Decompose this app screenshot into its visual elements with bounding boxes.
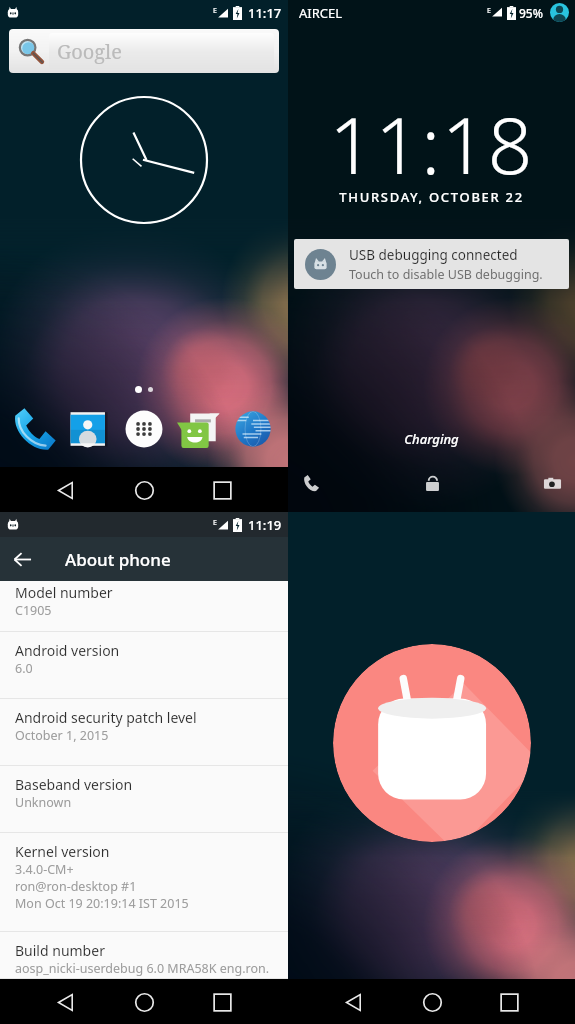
- button[interactable]: Messaging: [175, 405, 223, 453]
- staticText: Touch to disable USB debugging.: [349, 266, 543, 283]
- staticText: October 1, 2015: [15, 727, 109, 744]
- staticText: 11:19: [248, 516, 282, 534]
- button[interactable]: Kernel version: [0, 833, 288, 931]
- button[interactable]: Home: [414, 984, 450, 1020]
- button[interactable]: Recents: [204, 984, 240, 1020]
- button[interactable]: Phone: [294, 466, 328, 500]
- staticText: 3.4.0-CM+: [15, 861, 74, 878]
- button[interactable]: Android security patch level: [0, 699, 288, 765]
- staticText: 95%: [519, 5, 543, 21]
- button[interactable]: Back: [48, 984, 84, 1020]
- staticText: aosp_nicki-userdebug 6.0 MRA58K eng.ron.: [15, 960, 270, 977]
- staticText: 11:18: [288, 91, 575, 197]
- staticText: Android version: [15, 641, 120, 660]
- staticText: E: [213, 518, 217, 528]
- staticText: Kernel version: [15, 842, 110, 861]
- button[interactable]: Home: [126, 984, 162, 1020]
- button[interactable]: Back: [0, 537, 44, 581]
- button[interactable]: Model number: [0, 581, 288, 631]
- staticText: Mon Oct 19 20:19:14 IST 2015: [15, 895, 189, 912]
- button[interactable]: Camera: [535, 466, 569, 500]
- button[interactable]: USB debugging connected: [294, 239, 569, 289]
- staticText: 6.0: [15, 660, 33, 677]
- button[interactable]: Unlock: [415, 466, 449, 500]
- button[interactable]: Apps: [120, 405, 168, 453]
- staticText: Build number: [15, 941, 105, 960]
- staticText: Model number: [15, 583, 113, 602]
- staticText: THURSDAY, OCTOBER 22: [288, 188, 575, 206]
- button[interactable]: Android version: [0, 632, 288, 698]
- button[interactable]: Back: [336, 984, 372, 1020]
- staticText: C1905: [15, 602, 52, 619]
- button[interactable]: Recents: [491, 984, 527, 1020]
- staticText: AIRCEL: [299, 4, 343, 22]
- staticText: Charging: [288, 430, 575, 448]
- staticText: E: [487, 6, 491, 16]
- staticText: Unknown: [15, 794, 72, 811]
- button[interactable]: Home: [126, 472, 162, 508]
- staticText: USB debugging connected: [349, 246, 518, 264]
- staticText: ron@ron-desktop #1: [15, 878, 137, 895]
- button[interactable]: Google: [9, 29, 279, 73]
- button[interactable]: Phone: [11, 405, 59, 453]
- staticText: E: [213, 6, 217, 16]
- staticText: 11:17: [248, 4, 282, 22]
- button[interactable]: Marshmallow: [333, 644, 531, 842]
- staticText: Google: [57, 38, 123, 65]
- staticText: Android security patch level: [15, 708, 197, 727]
- button[interactable]: Recents: [204, 472, 240, 508]
- button[interactable]: Contacts: [65, 405, 113, 453]
- button[interactable]: Build number: [0, 932, 288, 978]
- button[interactable]: Back: [48, 472, 84, 508]
- staticText: Baseband version: [15, 775, 133, 794]
- button[interactable]: Baseband version: [0, 766, 288, 832]
- button[interactable]: Browser: [229, 405, 277, 453]
- staticText: About phone: [65, 548, 171, 571]
